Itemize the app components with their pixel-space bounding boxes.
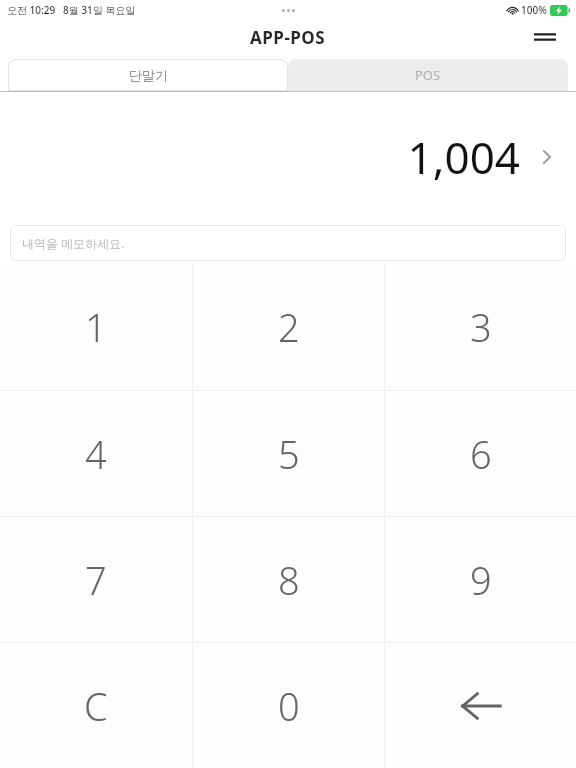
staticText: 100% (521, 3, 547, 17)
button[interactable]: 단말기 (8, 59, 288, 91)
button[interactable]: 1,004 (407, 127, 552, 187)
button[interactable]: 4 (0, 391, 192, 516)
staticText: 0 (278, 680, 300, 732)
button[interactable]: Backspace (385, 643, 576, 768)
button[interactable]: 내역을 메모하세요. (10, 225, 566, 261)
staticText: 6 (470, 428, 492, 480)
button[interactable]: 7 (0, 517, 192, 642)
staticText: 8 (278, 554, 300, 606)
staticText: POS (415, 66, 441, 84)
button[interactable]: C (0, 643, 192, 768)
staticText: 1 (85, 301, 107, 353)
button[interactable]: 6 (385, 391, 576, 516)
staticText: 5 (278, 428, 300, 480)
button[interactable]: Menu (528, 20, 562, 54)
staticText: 8월 31일 목요일 (63, 3, 136, 17)
staticText: 3 (470, 301, 492, 353)
button[interactable]: 3 (385, 264, 576, 390)
staticText: 내역을 메모하세요. (22, 235, 125, 251)
button[interactable]: 9 (385, 517, 576, 642)
button[interactable]: 2 (193, 264, 384, 390)
staticText: 9 (470, 554, 492, 606)
staticText: 오전 10:29 (7, 3, 56, 17)
staticText: 4 (85, 428, 107, 480)
button[interactable]: 0 (193, 643, 384, 768)
staticText: 7 (85, 554, 107, 606)
button[interactable]: 5 (193, 391, 384, 516)
button[interactable]: 1 (0, 264, 192, 390)
staticText: 단말기 (129, 67, 168, 83)
staticText: 2 (278, 301, 300, 353)
button[interactable]: 8 (193, 517, 384, 642)
button[interactable]: POS (288, 59, 568, 91)
staticText: APP-POS (250, 26, 326, 49)
staticText: 1,004 (407, 127, 520, 187)
staticText: C (84, 680, 108, 732)
